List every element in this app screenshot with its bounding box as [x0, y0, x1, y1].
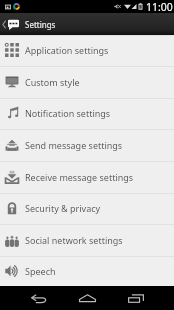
staticText: Application settings [25, 44, 109, 56]
button[interactable]: Back [19, 286, 59, 310]
button[interactable]: Notification settings [0, 99, 174, 130]
staticText: Send message settings [25, 139, 123, 151]
staticText: 11:00 [146, 0, 173, 13]
button[interactable]: Custom style [0, 67, 174, 99]
button[interactable]: Application settings [0, 35, 174, 67]
staticText: Custom style [25, 76, 80, 88]
button[interactable]: Receive message settings [0, 162, 174, 194]
button[interactable]: Recent apps [116, 286, 156, 310]
button[interactable]: Send message settings [0, 130, 174, 162]
button[interactable]: Security & privacy [0, 194, 174, 225]
staticText: Notification settings [25, 107, 111, 119]
button[interactable]: Speech [0, 257, 174, 286]
button[interactable]: Social network settings [0, 225, 174, 257]
button[interactable]: Navigate up [0, 13, 22, 35]
staticText: Settings [25, 19, 56, 30]
staticText: Speech [25, 265, 56, 277]
staticText: Security & privacy [25, 202, 101, 214]
staticText: Receive message settings [25, 171, 134, 183]
staticText: Social network settings [25, 234, 123, 246]
button[interactable]: Home [67, 286, 107, 310]
